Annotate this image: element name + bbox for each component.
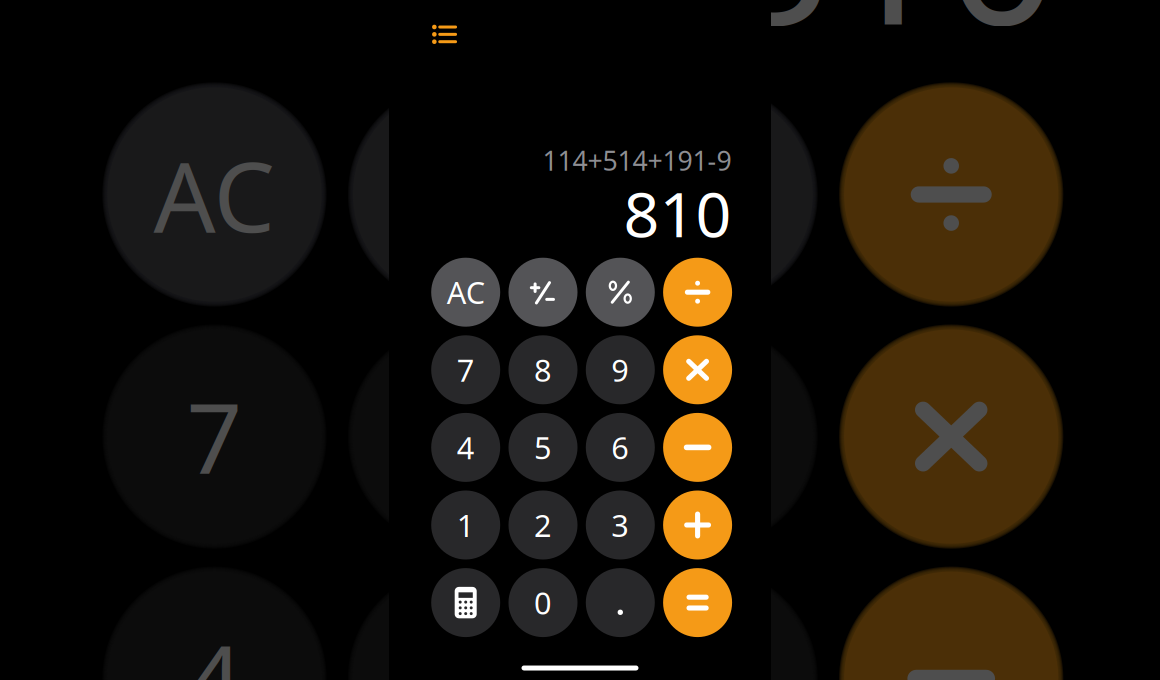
button[interactable]: 1: [431, 490, 500, 559]
button[interactable]: Multiply: [663, 335, 732, 404]
staticText: 6: [678, 614, 734, 680]
staticText: 4: [186, 614, 242, 680]
staticText: 7: [457, 349, 475, 390]
button[interactable]: 8: [508, 335, 577, 404]
button[interactable]: 4: [431, 413, 500, 482]
button[interactable]: 7: [431, 335, 500, 404]
button[interactable]: History: [427, 18, 463, 52]
button[interactable]: 2: [508, 490, 577, 559]
staticText: 3: [611, 505, 629, 545]
staticText: 9: [611, 349, 629, 390]
staticText: 114+514+191-9: [542, 143, 731, 178]
staticText: 5: [432, 614, 488, 680]
staticText: 5: [534, 427, 552, 468]
button[interactable]: 9: [586, 335, 655, 404]
button[interactable]: Converter: [431, 568, 500, 637]
button[interactable]: 3: [586, 490, 655, 559]
button[interactable]: All clear: [431, 258, 500, 327]
button[interactable]: Equals: [663, 568, 732, 637]
staticText: AC: [153, 130, 275, 259]
staticText: 6: [611, 427, 629, 468]
staticText: 8: [534, 349, 552, 390]
staticText: 4: [457, 427, 475, 468]
staticText: 7: [186, 372, 242, 501]
staticText: 810: [624, 171, 732, 255]
button[interactable]: Plus: [663, 490, 732, 559]
staticText: 1: [457, 505, 475, 545]
button[interactable]: 0: [508, 568, 577, 637]
staticText: 2: [534, 505, 552, 545]
button[interactable]: 6: [586, 413, 655, 482]
button[interactable]: 5: [508, 413, 577, 482]
staticText: 9: [678, 372, 734, 501]
button[interactable]: Percent: [586, 258, 655, 327]
button[interactable]: Plus minus: [508, 258, 577, 327]
staticText: 0: [534, 582, 552, 623]
button[interactable]: Divide: [663, 258, 732, 327]
staticText: 8: [432, 372, 488, 501]
staticText: AC: [447, 272, 485, 312]
button[interactable]: Decimal: [586, 568, 655, 637]
button[interactable]: Minus: [663, 413, 732, 482]
staticText: 810: [717, 0, 1059, 79]
